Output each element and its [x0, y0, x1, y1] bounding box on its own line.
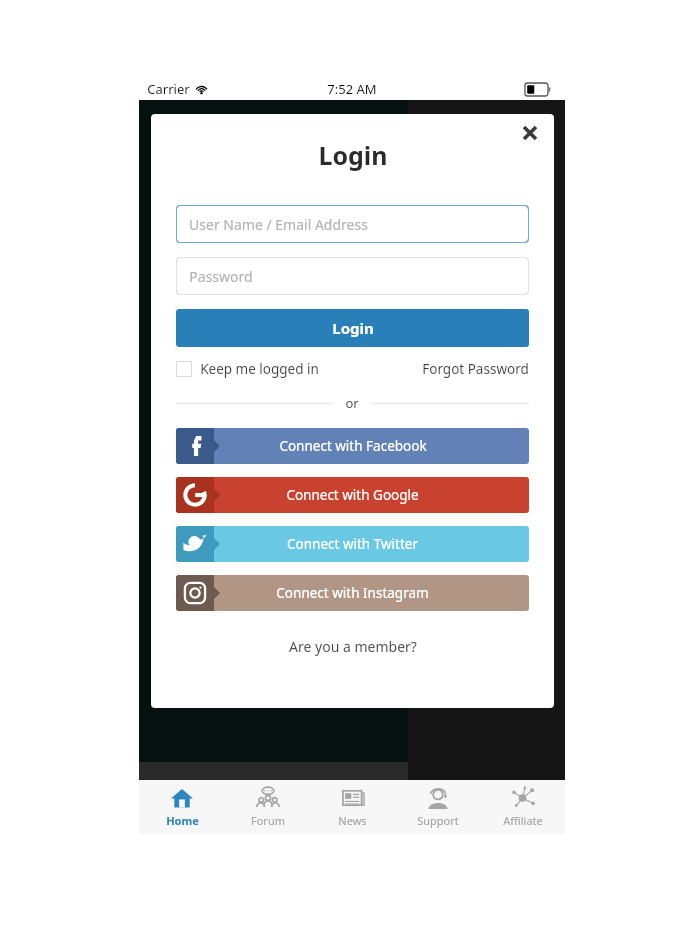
staticText: Affiliate — [503, 813, 543, 828]
staticText: Password — [189, 267, 253, 286]
staticText: Carrier — [147, 80, 190, 98]
staticText: Connect with Facebook — [279, 437, 427, 455]
button[interactable]: Affiliate — [480, 780, 565, 834]
staticText: Forgot Password — [422, 360, 529, 378]
button[interactable]: Forgot Password — [422, 360, 529, 378]
button[interactable]: Password — [176, 257, 529, 295]
button[interactable]: Keep me logged in — [176, 360, 319, 378]
staticText: Are you a member? — [289, 637, 417, 656]
staticText: User Name / Email Address — [189, 215, 368, 234]
button[interactable]: Connect with Instagram — [176, 575, 529, 611]
button[interactable]: User Name / Email Address — [176, 205, 529, 243]
staticText: Connect with Twitter — [287, 535, 418, 553]
button[interactable]: Connect with Google — [176, 477, 529, 513]
staticText: or — [345, 394, 359, 412]
staticText: 7:52 AM — [327, 80, 377, 98]
button[interactable]: Login — [176, 309, 529, 347]
button[interactable]: Are you a member? — [176, 637, 529, 656]
staticText: Connect with Google — [286, 486, 419, 504]
button[interactable]: Connect with Facebook — [176, 428, 529, 464]
staticText: Connect with Instagram — [276, 584, 429, 602]
staticText: Support — [417, 813, 459, 828]
staticText: Login — [332, 318, 374, 338]
button[interactable]: Support — [395, 780, 480, 834]
button[interactable]: Connect with Twitter — [176, 526, 529, 562]
staticText: Login — [318, 138, 388, 172]
button[interactable]: Forum — [225, 780, 310, 834]
button[interactable]: Close — [515, 118, 545, 148]
button[interactable]: News — [310, 780, 395, 834]
staticText: Home — [166, 813, 199, 828]
button[interactable]: Home — [139, 780, 225, 834]
staticText: Forum — [251, 813, 285, 828]
staticText: Keep me logged in — [200, 360, 319, 378]
staticText: News — [338, 813, 367, 828]
